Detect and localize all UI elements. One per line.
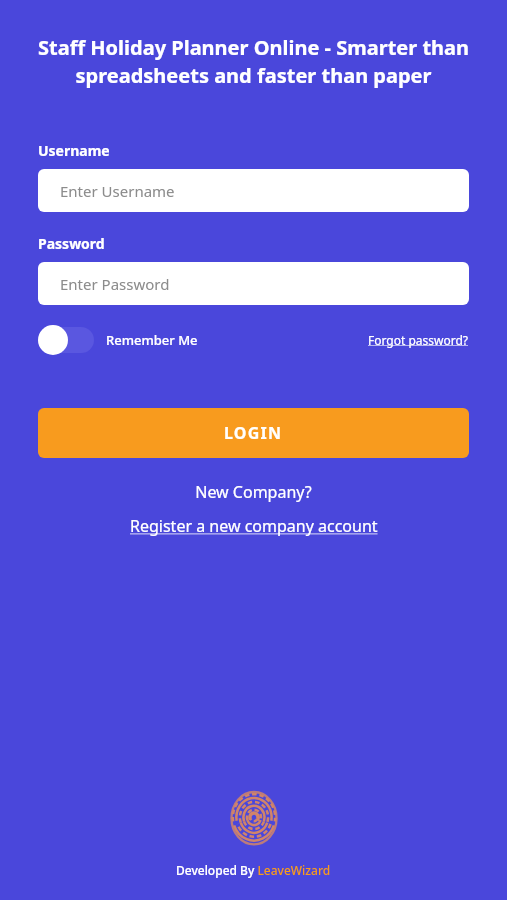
button[interactable]: LOGIN	[38, 408, 469, 458]
staticText: LOGIN	[224, 422, 283, 444]
button[interactable]: Enter Username	[38, 169, 469, 212]
staticText: Enter Password	[60, 274, 170, 294]
staticText: Staff Holiday Planner Online - Smarter t…	[26, 34, 481, 89]
staticText: Remember Me	[106, 331, 198, 349]
button[interactable]: Remember Me toggle	[38, 324, 198, 356]
button[interactable]: Fingerprint login	[226, 788, 282, 850]
button[interactable]: Register a new company account	[126, 513, 382, 539]
staticText: Password	[38, 234, 105, 253]
staticText: New Company?	[0, 481, 507, 503]
staticText: Developed By LeaveWizard	[176, 862, 331, 878]
staticText: Username	[38, 141, 110, 160]
button[interactable]: Enter Password	[38, 262, 469, 305]
button[interactable]: Forgot password?	[368, 332, 469, 348]
staticText: Enter Username	[60, 181, 175, 201]
